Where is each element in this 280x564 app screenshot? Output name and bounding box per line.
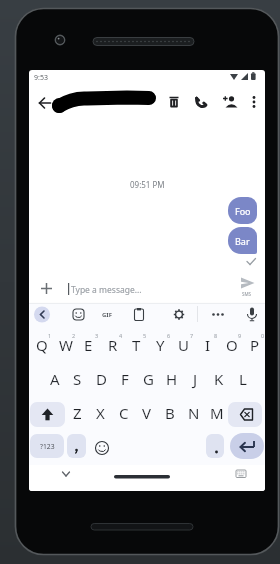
staticText: Type a message... xyxy=(71,284,142,296)
button[interactable] xyxy=(244,306,260,322)
button[interactable]: F xyxy=(113,367,136,391)
staticText: X xyxy=(96,403,105,423)
staticText: V xyxy=(142,403,152,423)
button[interactable] xyxy=(58,466,74,481)
staticText: K xyxy=(214,369,224,389)
button[interactable]: Z xyxy=(66,401,89,425)
button[interactable] xyxy=(228,402,262,427)
staticText: W xyxy=(59,335,73,355)
button[interactable]: X xyxy=(89,401,112,425)
button[interactable] xyxy=(92,434,112,458)
button[interactable]: Y xyxy=(149,333,172,357)
button[interactable] xyxy=(230,433,264,459)
staticText: ?123 xyxy=(40,442,55,451)
button[interactable]: Bar xyxy=(228,227,257,254)
button[interactable] xyxy=(209,306,227,322)
staticText: GIF xyxy=(102,311,112,319)
button[interactable]: A xyxy=(43,367,66,391)
button[interactable]: U xyxy=(172,333,195,357)
button[interactable] xyxy=(219,91,241,113)
button[interactable] xyxy=(190,91,212,113)
staticText: Foo xyxy=(235,205,251,217)
button[interactable]: H xyxy=(160,367,183,391)
staticText: 6 xyxy=(167,332,171,339)
staticText: 0 xyxy=(261,332,265,339)
staticText: A xyxy=(50,369,60,389)
staticText: 2 xyxy=(72,332,76,339)
button[interactable] xyxy=(67,434,86,458)
button[interactable] xyxy=(33,92,57,114)
staticText: 9:53 xyxy=(34,73,48,83)
staticText: I xyxy=(205,335,211,355)
button[interactable]: V xyxy=(135,401,158,425)
staticText: 5 xyxy=(143,332,147,339)
staticText: T xyxy=(132,335,141,355)
button[interactable]: S xyxy=(66,367,89,391)
button[interactable]: Type a message... xyxy=(29,275,265,303)
button[interactable]: E xyxy=(77,333,100,357)
staticText: M xyxy=(210,403,224,423)
staticText: N xyxy=(188,403,200,423)
button[interactable]: G xyxy=(137,367,160,391)
button[interactable]: N xyxy=(182,401,205,425)
button[interactable] xyxy=(30,402,65,427)
staticText: J xyxy=(193,369,198,389)
staticText: E xyxy=(84,335,93,355)
button[interactable]: R xyxy=(101,333,124,357)
button[interactable]: I xyxy=(196,333,219,357)
button[interactable]: P xyxy=(243,333,265,357)
button[interactable] xyxy=(172,306,186,322)
staticText: 4 xyxy=(119,332,123,339)
button[interactable] xyxy=(206,434,224,458)
button[interactable]: O xyxy=(220,333,243,357)
button[interactable]: D xyxy=(90,367,113,391)
staticText: 1 xyxy=(48,332,52,339)
button[interactable] xyxy=(245,91,263,113)
button[interactable]: Q xyxy=(30,333,53,357)
button[interactable]: T xyxy=(125,333,148,357)
staticText: Z xyxy=(73,403,82,423)
button[interactable] xyxy=(34,306,50,322)
staticText: 7 xyxy=(190,332,194,339)
staticText: U xyxy=(178,335,189,355)
button[interactable]: B xyxy=(158,401,181,425)
staticText: R xyxy=(108,335,118,355)
button[interactable]: M xyxy=(205,401,228,425)
staticText: S xyxy=(73,369,82,389)
button[interactable]: W xyxy=(54,333,77,357)
staticText: H xyxy=(166,369,178,389)
button[interactable] xyxy=(100,306,117,322)
staticText: Q xyxy=(36,335,48,355)
staticText: O xyxy=(226,335,238,355)
staticText: 09:51 PM xyxy=(130,179,165,190)
staticText: P xyxy=(250,335,260,355)
button[interactable] xyxy=(232,466,250,481)
button[interactable]: C xyxy=(112,401,135,425)
button[interactable]: J xyxy=(184,367,207,391)
staticText: 8 xyxy=(214,332,218,339)
button[interactable] xyxy=(163,91,185,113)
button[interactable]: L xyxy=(231,367,254,391)
staticText: C xyxy=(119,403,129,423)
staticText: Y xyxy=(156,335,165,355)
staticText: 3 xyxy=(95,332,99,339)
staticText: L xyxy=(239,369,247,389)
button[interactable]: Foo xyxy=(228,197,257,224)
staticText: F xyxy=(121,369,129,389)
staticText: D xyxy=(96,369,107,389)
staticText: 9 xyxy=(238,332,242,339)
staticText: G xyxy=(143,369,154,389)
button[interactable]: ?123 xyxy=(30,434,64,458)
button[interactable]: K xyxy=(207,367,230,391)
button[interactable] xyxy=(71,306,86,322)
button[interactable] xyxy=(132,306,146,322)
staticText: SMS xyxy=(242,291,252,297)
staticText: Bar xyxy=(235,235,250,247)
staticText: B xyxy=(165,403,175,423)
